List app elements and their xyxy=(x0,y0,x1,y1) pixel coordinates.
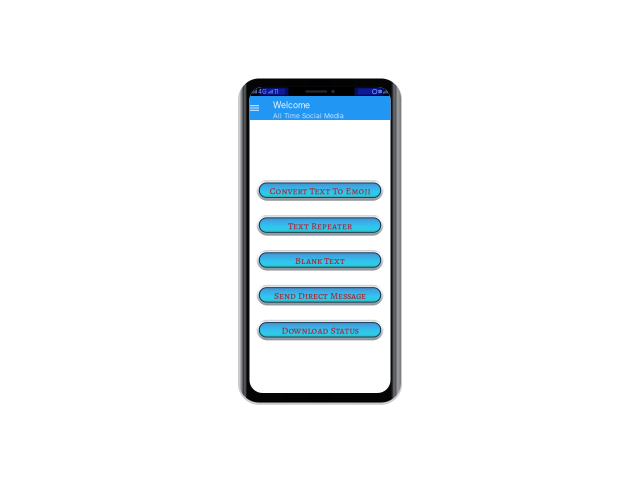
button[interactable]: Download Status xyxy=(256,319,383,341)
button[interactable]: Text Repeater xyxy=(256,214,383,236)
button[interactable]: Blank Text xyxy=(256,249,383,271)
staticText: All Time Social Media xyxy=(273,112,344,120)
staticText: Convert Text To Emoji xyxy=(269,184,370,198)
staticText: 11 xyxy=(274,88,278,95)
button[interactable]: Menu xyxy=(250,96,259,120)
button[interactable]: Send Direct Message xyxy=(256,284,383,306)
staticText: Blank Text xyxy=(295,254,345,267)
staticText: Welcome xyxy=(273,100,310,110)
staticText: Send Direct Message xyxy=(274,289,366,302)
staticText: 4G xyxy=(258,88,267,95)
button[interactable]: Convert Text To Emoji xyxy=(256,179,383,201)
staticText: Download Status xyxy=(281,324,358,337)
staticText: Text Repeater xyxy=(288,219,352,232)
